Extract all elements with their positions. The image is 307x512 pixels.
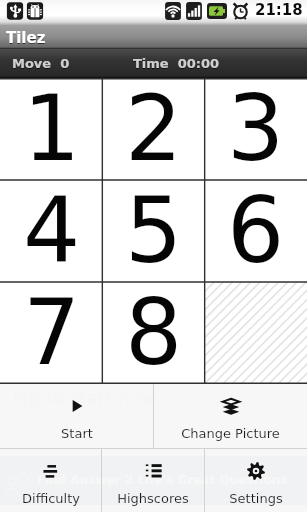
staticText: 2 bbox=[125, 76, 183, 178]
staticText: Time 00:00 bbox=[133, 57, 220, 72]
button[interactable]: Highscores bbox=[102, 449, 204, 512]
other: Start bbox=[68, 397, 86, 415]
staticText: Move 0 bbox=[12, 57, 70, 72]
button[interactable]: 7 bbox=[0, 282, 103, 384]
staticText: Highscores bbox=[117, 491, 189, 506]
button[interactable]: 6 bbox=[205, 180, 307, 282]
other: Change Picture bbox=[222, 397, 240, 415]
button[interactable]: Start bbox=[0, 384, 153, 448]
staticText: Settings bbox=[229, 491, 283, 506]
staticText: 4 bbox=[23, 178, 81, 280]
staticText: 8 bbox=[125, 280, 183, 382]
button[interactable]: Difficulty bbox=[0, 449, 101, 512]
staticText: Tap to start now bbox=[10, 387, 155, 408]
staticText: 5 bbox=[125, 178, 183, 280]
staticText: 6 bbox=[227, 178, 285, 280]
staticText: 1 bbox=[23, 76, 81, 178]
staticText: 3 bbox=[227, 76, 285, 178]
staticText: Start bbox=[61, 426, 93, 441]
staticText: Change Picture bbox=[181, 426, 280, 441]
button[interactable]: 3 bbox=[205, 78, 307, 180]
other: Settings bbox=[247, 462, 265, 480]
button[interactable]: 5 bbox=[103, 180, 205, 282]
button[interactable]: Change Picture bbox=[154, 384, 307, 448]
other: Difficulty bbox=[42, 462, 60, 480]
staticText: Move 0 bbox=[12, 56, 70, 71]
staticText: Tilez bbox=[6, 29, 46, 46]
other: Highscores bbox=[144, 462, 162, 480]
staticText: Time 00:00 bbox=[133, 56, 220, 71]
staticText: Tilez bbox=[6, 30, 46, 47]
staticText: Find Answer 2 Life's Great Questions bbox=[37, 473, 288, 487]
button[interactable] bbox=[205, 282, 307, 384]
staticText: 7 bbox=[23, 280, 81, 382]
button[interactable]: 8 bbox=[103, 282, 205, 384]
button[interactable]: 1 bbox=[0, 78, 103, 180]
button[interactable]: Settings bbox=[205, 449, 307, 512]
button[interactable]: 2 bbox=[103, 78, 205, 180]
staticText: Difficulty bbox=[22, 491, 80, 506]
button[interactable]: 4 bbox=[0, 180, 103, 282]
staticText: 21:18 bbox=[255, 1, 303, 18]
